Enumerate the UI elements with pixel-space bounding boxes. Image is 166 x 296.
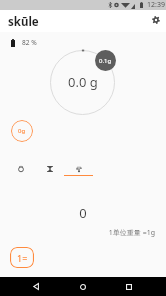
button[interactable]: Hourglass xyxy=(35,157,64,180)
staticText: 1单位重量 =1g xyxy=(0,228,155,238)
button[interactable]: Counting xyxy=(64,157,93,180)
button[interactable]: Back xyxy=(26,277,46,296)
button[interactable]: 1= xyxy=(10,247,34,268)
staticText: 0.0 g xyxy=(68,73,98,91)
staticText: 0 xyxy=(0,204,166,222)
button[interactable]: Settings xyxy=(147,11,165,29)
button[interactable]: Recents xyxy=(119,277,139,296)
staticText: 0.1g xyxy=(99,57,112,65)
staticText: 0g xyxy=(18,127,26,135)
staticText: 82 % xyxy=(22,38,37,47)
staticText: 12:39 xyxy=(147,0,165,10)
button[interactable]: 0.1g xyxy=(95,50,116,71)
staticText: 1= xyxy=(17,252,28,264)
button[interactable]: Timer xyxy=(6,157,35,180)
staticText: skūle xyxy=(8,14,39,30)
button[interactable]: Home xyxy=(73,277,93,296)
button[interactable]: 0g xyxy=(11,120,33,142)
